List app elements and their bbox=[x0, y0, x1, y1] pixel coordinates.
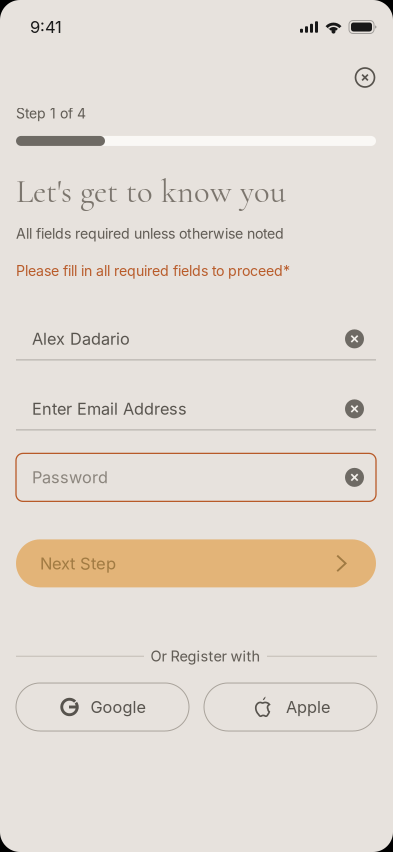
staticText: Apple bbox=[286, 697, 330, 717]
staticText: Enter Email Address bbox=[32, 399, 187, 419]
button[interactable]: Close bbox=[343, 55, 387, 99]
staticText: Google bbox=[90, 697, 145, 717]
staticText: Or Register with bbox=[150, 647, 260, 665]
button[interactable]: Next Step bbox=[16, 539, 376, 587]
button[interactable]: Clear password bbox=[345, 468, 364, 487]
staticText: Please fill in all required fields to pr… bbox=[16, 262, 290, 279]
staticText: Alex Dadario bbox=[32, 329, 130, 349]
staticText: Let's get to know you bbox=[16, 172, 286, 211]
staticText: Next Step bbox=[40, 553, 116, 573]
button[interactable]: Clear name bbox=[345, 329, 364, 348]
staticText: Password bbox=[32, 467, 108, 487]
staticText: Step 1 of 4 bbox=[16, 105, 86, 122]
staticText: 9:41 bbox=[30, 17, 62, 37]
button[interactable]: Clear email bbox=[345, 399, 364, 418]
button[interactable]: Apple bbox=[204, 683, 377, 731]
button[interactable]: Google bbox=[16, 683, 189, 731]
staticText: All fields required unless otherwise not… bbox=[16, 225, 284, 242]
